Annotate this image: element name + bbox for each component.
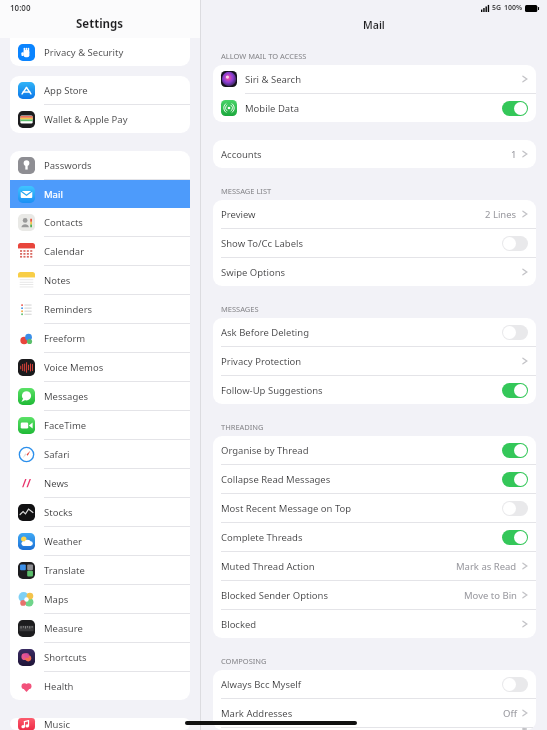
- button[interactable]: Toggle on: [502, 530, 528, 545]
- button[interactable]: Toggle off: [502, 677, 528, 692]
- button[interactable]: Collapse Read Messages: [213, 465, 536, 494]
- staticText: Collapse Read Messages: [221, 473, 331, 486]
- staticText: Ask Before Deleting: [221, 326, 309, 339]
- staticText: Swipe Options: [221, 266, 286, 279]
- button[interactable]: Toggle on: [502, 472, 528, 487]
- staticText: Move to Bin: [464, 589, 517, 602]
- button[interactable]: Most Recent Message on Top: [213, 494, 536, 523]
- button[interactable]: Preview: [213, 200, 536, 229]
- button[interactable]: Accounts: [213, 140, 536, 168]
- staticText: Maps: [44, 593, 69, 606]
- staticText: Mail: [44, 188, 63, 201]
- button[interactable]: News: [10, 469, 190, 498]
- button[interactable]: Mail: [10, 180, 190, 208]
- button[interactable]: Swipe Options: [213, 258, 536, 286]
- button[interactable]: Stocks: [10, 498, 190, 527]
- staticText: Safari: [44, 448, 70, 461]
- staticText: App Store: [44, 84, 88, 97]
- button[interactable]: Toggle on: [502, 443, 528, 458]
- button[interactable]: Health: [10, 672, 190, 700]
- button[interactable]: Blocked Sender Options: [213, 581, 536, 610]
- staticText: FaceTime: [44, 419, 87, 432]
- staticText: Organise by Thread: [221, 444, 309, 457]
- staticText: Mobile Data: [245, 102, 299, 115]
- button[interactable]: Organise by Thread: [213, 436, 536, 465]
- button[interactable]: Toggle on: [502, 101, 528, 116]
- staticText: Always Bcc Myself: [221, 678, 302, 691]
- staticText: Privacy & Security: [44, 46, 124, 59]
- staticText: Off: [503, 707, 517, 720]
- button[interactable]: Show To/Cc Labels: [213, 229, 536, 258]
- staticText: Reminders: [44, 303, 93, 316]
- staticText: Mail: [363, 18, 385, 32]
- staticText: Mark Addresses: [221, 707, 293, 720]
- staticText: MESSAGE LIST: [221, 186, 272, 196]
- button[interactable]: Wallet & Apple Pay: [10, 105, 190, 133]
- staticText: Blocked: [221, 618, 257, 631]
- button[interactable]: Muted Thread Action: [213, 552, 536, 581]
- button[interactable]: Always Bcc Myself: [213, 670, 536, 699]
- button[interactable]: Voice Memos: [10, 353, 190, 382]
- staticText: Follow-Up Suggestions: [221, 384, 323, 397]
- button[interactable]: Toggle on: [502, 383, 528, 398]
- button[interactable]: Freeform: [10, 324, 190, 353]
- button[interactable]: Passwords: [10, 151, 190, 180]
- staticText: Wallet & Apple Pay: [44, 113, 128, 126]
- staticText: Privacy Protection: [221, 355, 302, 368]
- button[interactable]: Increase Quote Level: [213, 728, 536, 730]
- staticText: Show To/Cc Labels: [221, 237, 304, 250]
- button[interactable]: Translate: [10, 556, 190, 585]
- button[interactable]: Siri & Search: [213, 65, 536, 94]
- staticText: Mark as Read: [456, 560, 517, 573]
- button[interactable]: Privacy & Security: [10, 38, 190, 66]
- staticText: Music: [44, 718, 71, 730]
- button[interactable]: Mark Addresses: [213, 699, 536, 728]
- button[interactable]: Complete Threads: [213, 523, 536, 552]
- staticText: ALLOW MAIL TO ACCESS: [221, 51, 307, 61]
- staticText: Settings: [76, 16, 124, 32]
- button[interactable]: Follow-Up Suggestions: [213, 376, 536, 404]
- staticText: 1: [511, 148, 517, 161]
- button[interactable]: Toggle off: [502, 501, 528, 516]
- button[interactable]: Measure: [10, 614, 190, 643]
- button[interactable]: Contacts: [10, 208, 190, 237]
- staticText: Muted Thread Action: [221, 560, 315, 573]
- staticText: 2 Lines: [485, 208, 517, 221]
- staticText: 100%: [504, 3, 523, 13]
- button[interactable]: Notes: [10, 266, 190, 295]
- staticText: 10:00: [10, 2, 31, 13]
- button[interactable]: Mobile Data: [213, 94, 536, 122]
- staticText: Blocked Sender Options: [221, 589, 329, 602]
- staticText: Complete Threads: [221, 531, 303, 544]
- staticText: THREADING: [221, 422, 264, 432]
- button[interactable]: Safari: [10, 440, 190, 469]
- staticText: News: [44, 477, 69, 490]
- button[interactable]: Privacy Protection: [213, 347, 536, 376]
- button[interactable]: Reminders: [10, 295, 190, 324]
- staticText: 5G: [492, 3, 502, 13]
- staticText: Notes: [44, 274, 71, 287]
- staticText: Measure: [44, 622, 83, 635]
- button[interactable]: Shortcuts: [10, 643, 190, 672]
- staticText: Most Recent Message on Top: [221, 502, 352, 515]
- staticText: Passwords: [44, 159, 92, 172]
- staticText: Shortcuts: [44, 651, 87, 664]
- button[interactable]: Maps: [10, 585, 190, 614]
- button[interactable]: FaceTime: [10, 411, 190, 440]
- button[interactable]: Blocked: [213, 610, 536, 638]
- button[interactable]: App Store: [10, 76, 190, 105]
- button[interactable]: Messages: [10, 382, 190, 411]
- staticText: Health: [44, 680, 74, 693]
- button[interactable]: Ask Before Deleting: [213, 318, 536, 347]
- staticText: Siri & Search: [245, 73, 302, 86]
- button[interactable]: Weather: [10, 527, 190, 556]
- staticText: Freeform: [44, 332, 86, 345]
- button[interactable]: Toggle off: [502, 236, 528, 251]
- button[interactable]: Toggle off: [502, 325, 528, 340]
- button[interactable]: Calendar: [10, 237, 190, 266]
- staticText: Messages: [44, 390, 89, 403]
- button[interactable]: Music: [10, 718, 190, 730]
- staticText: Translate: [44, 564, 85, 577]
